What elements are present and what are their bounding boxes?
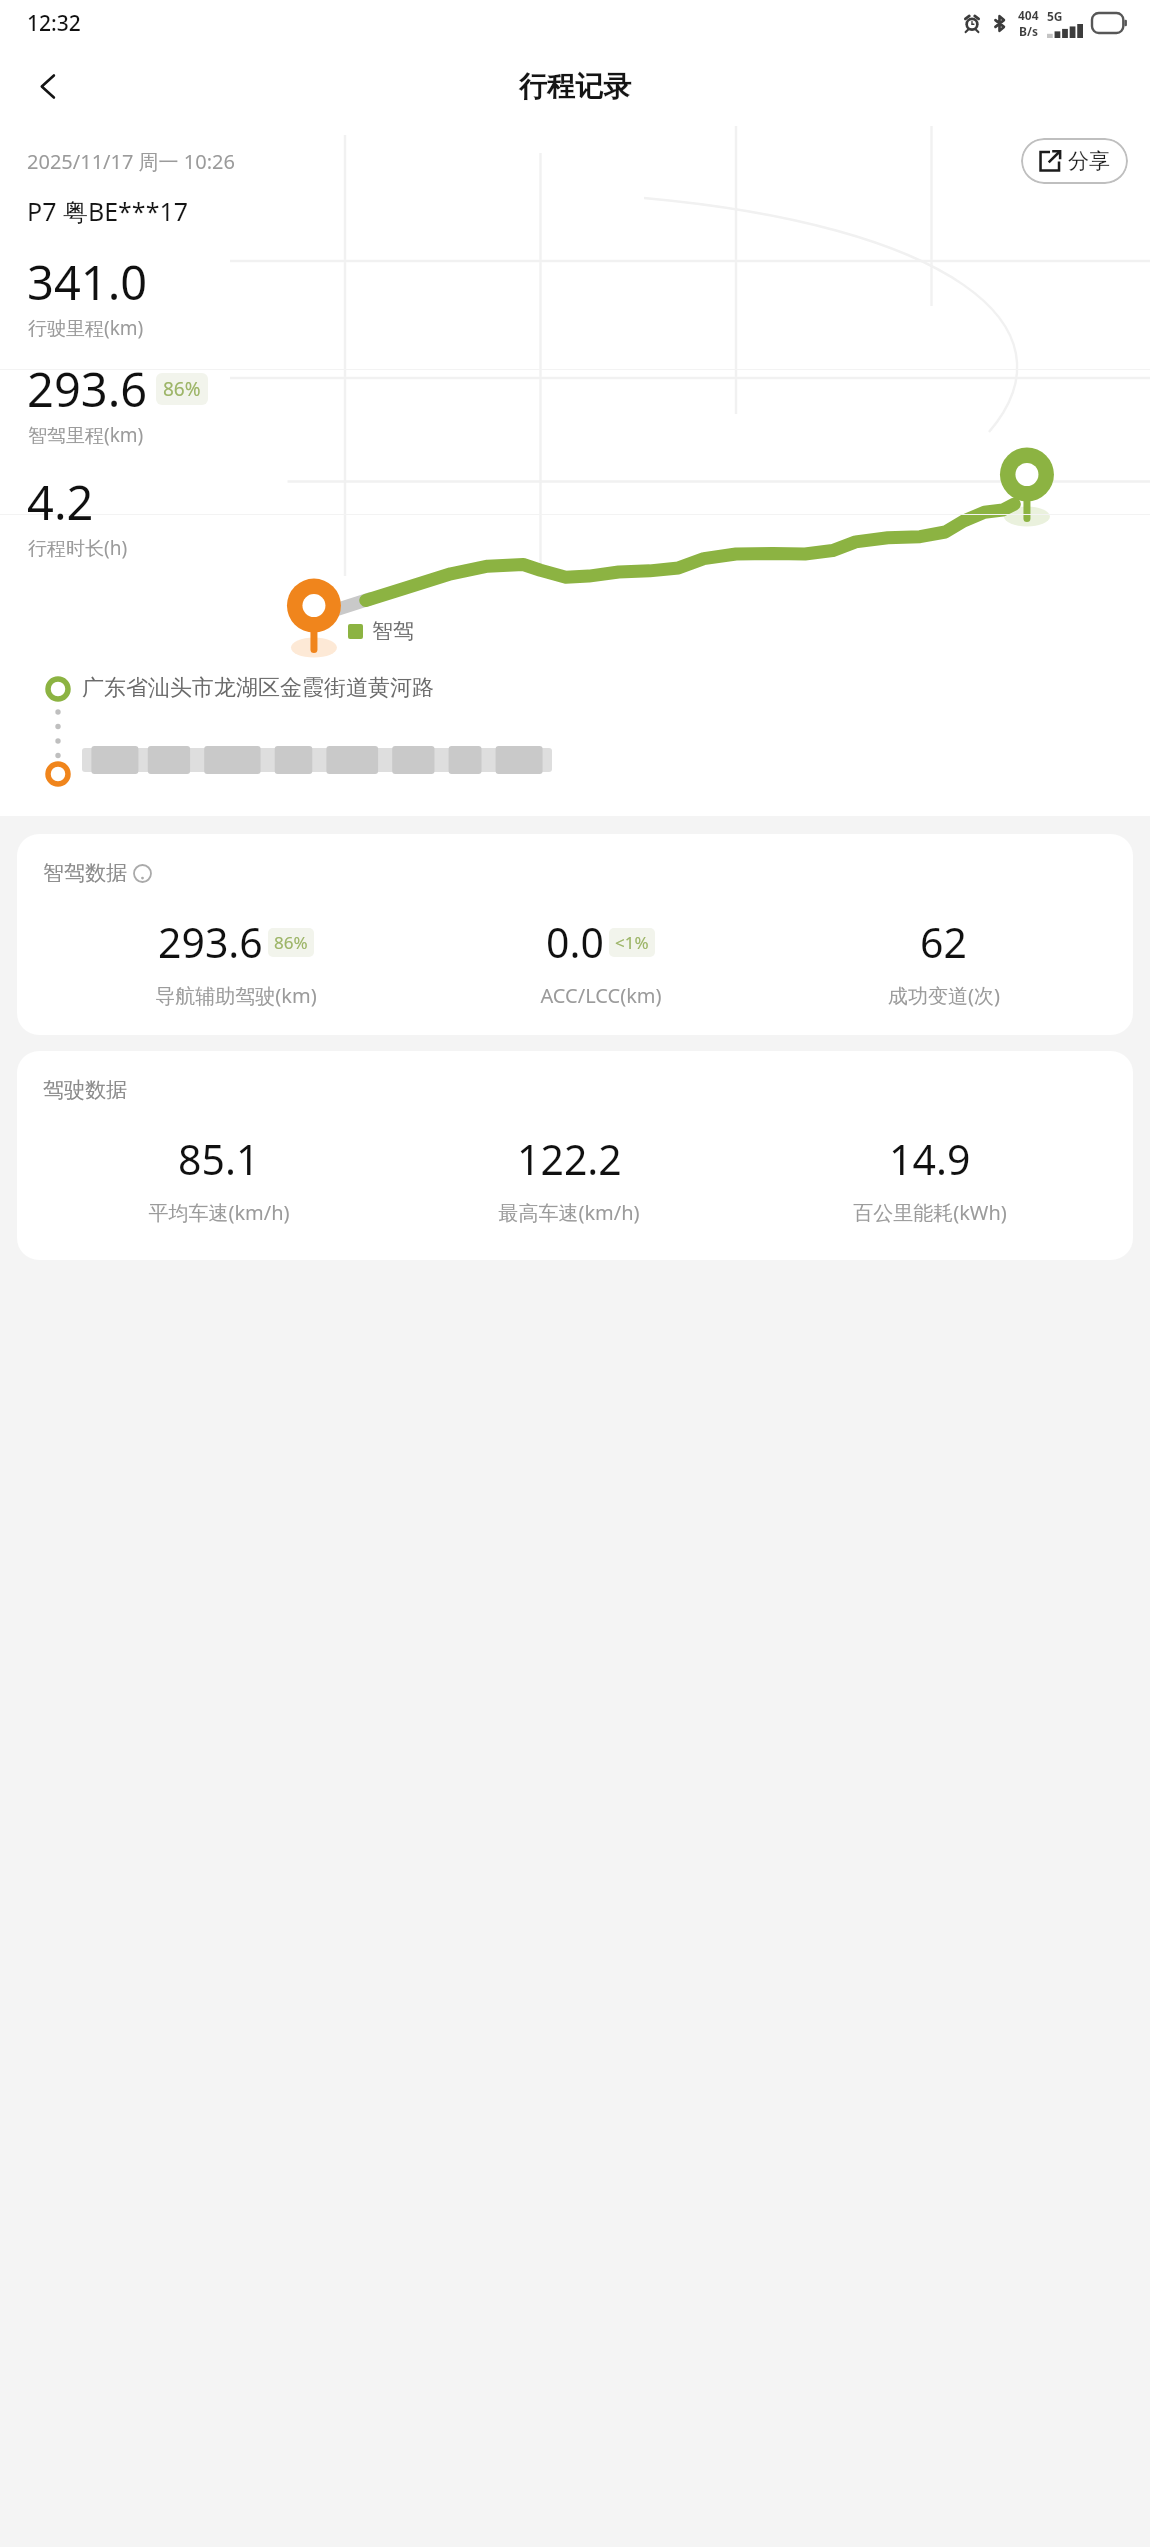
staticText: 导航辅助驾驶(km) bbox=[155, 982, 317, 1009]
staticText: 行程时长(h) bbox=[28, 535, 128, 561]
staticText: 4.2 bbox=[27, 470, 94, 534]
staticText: ACC/LCC(km) bbox=[540, 982, 662, 1009]
staticText: 2025/11/17 周一 10:26 bbox=[27, 148, 235, 175]
staticText: 平均车速(km/h) bbox=[148, 1199, 290, 1226]
button[interactable]: 智驾数据 bbox=[17, 834, 1133, 1035]
staticText: 广东省汕头市龙湖区金霞街道黄河路 bbox=[82, 674, 434, 702]
staticText: 5G bbox=[1047, 8, 1063, 24]
staticText: 404 bbox=[1018, 7, 1039, 23]
staticText: 百公里能耗(kWh) bbox=[853, 1199, 1007, 1226]
staticText: 293.6 bbox=[27, 357, 148, 421]
staticText: 0.0 bbox=[546, 914, 604, 970]
staticText: 14.9 bbox=[889, 1131, 971, 1187]
staticText: 341.0 bbox=[27, 250, 148, 314]
staticText: 最高车速(km/h) bbox=[498, 1199, 640, 1226]
staticText: 62 bbox=[920, 914, 967, 970]
staticText: 行程记录 bbox=[519, 69, 631, 104]
staticText: P7 粤BE***17 bbox=[27, 194, 189, 228]
staticText: 分享 bbox=[1068, 148, 1110, 174]
staticText: 驾驶数据 bbox=[43, 1077, 127, 1103]
button[interactable]: 返回 bbox=[16, 54, 80, 118]
staticText: 122.2 bbox=[517, 1131, 622, 1187]
staticText: 293.6 bbox=[158, 914, 263, 970]
staticText: <1% bbox=[615, 931, 649, 954]
staticText: 12:32 bbox=[27, 9, 81, 38]
staticText: 智驾数据 bbox=[43, 860, 127, 886]
staticText: B/s bbox=[1019, 23, 1038, 39]
button[interactable]: 分享 bbox=[1021, 138, 1128, 184]
staticText: 成功变道(次) bbox=[888, 982, 1000, 1009]
staticText: 行驶里程(km) bbox=[28, 315, 144, 341]
staticText: 智驾里程(km) bbox=[28, 422, 144, 448]
staticText: 智驾 bbox=[372, 618, 414, 644]
staticText: 86% bbox=[163, 376, 201, 402]
staticText: 86% bbox=[274, 931, 308, 954]
staticText: 85.1 bbox=[178, 1131, 260, 1187]
button[interactable]: 驾驶数据 bbox=[17, 1051, 1133, 1260]
